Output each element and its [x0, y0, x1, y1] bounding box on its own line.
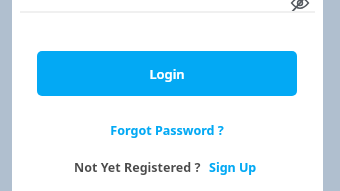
button[interactable]: Toggle password visibility	[288, 0, 312, 15]
button[interactable]: Login	[37, 51, 297, 96]
staticText: Sign Up	[209, 159, 257, 176]
staticText: Forgot Password ?	[110, 122, 224, 139]
button[interactable]: Sign Up	[207, 156, 259, 179]
staticText: Not Yet Registered ?	[74, 159, 201, 176]
button[interactable]: Forgot Password ?	[104, 119, 230, 142]
staticText: Login	[149, 65, 185, 83]
